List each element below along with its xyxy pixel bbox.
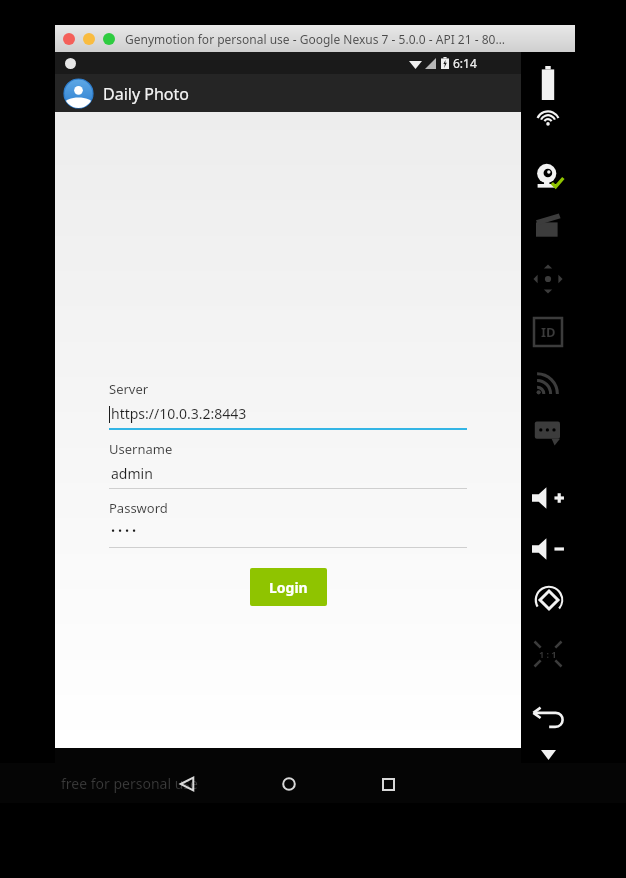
- button[interactable]: Recent apps: [373, 769, 403, 799]
- button[interactable]: Username: [109, 440, 467, 489]
- button[interactable]: GPS: [532, 112, 564, 144]
- staticText: Password: [109, 499, 168, 517]
- staticText: Server: [109, 380, 149, 398]
- button[interactable]: [103, 33, 115, 45]
- button[interactable]: D-pad: [533, 266, 563, 292]
- button[interactable]: Scale 1:1: [533, 640, 563, 668]
- button[interactable]: Camera: [532, 160, 564, 192]
- button[interactable]: Network: [535, 370, 561, 396]
- staticText: free for personal use: [61, 774, 198, 793]
- staticText: Daily Photo: [103, 83, 189, 105]
- button[interactable]: Back: [532, 704, 565, 730]
- button[interactable]: Home: [274, 769, 304, 799]
- staticText: 1 : 1: [539, 648, 557, 660]
- button[interactable]: Identifiers: [534, 318, 562, 346]
- button[interactable]: More: [541, 750, 556, 760]
- button[interactable]: Screen record: [533, 212, 563, 238]
- button[interactable]: [83, 33, 95, 45]
- staticText: Genymotion for personal use - Google Nex…: [125, 31, 505, 47]
- button[interactable]: Login: [250, 568, 327, 606]
- staticText: Login: [269, 578, 308, 597]
- staticText: admin: [111, 464, 153, 483]
- button[interactable]: [63, 33, 75, 45]
- staticText: • • • •: [111, 523, 137, 538]
- button[interactable]: Volume down: [532, 537, 566, 561]
- button[interactable]: Volume up: [532, 486, 566, 510]
- staticText: https://10.0.3.2:8443: [111, 404, 247, 423]
- button[interactable]: Back: [172, 769, 202, 799]
- button[interactable]: Messages: [533, 420, 563, 446]
- button[interactable]: Password: [109, 499, 467, 548]
- button[interactable]: Server: [109, 380, 467, 430]
- staticText: 6:14: [453, 55, 477, 71]
- staticText: Username: [109, 440, 173, 458]
- button[interactable]: Rotate: [534, 585, 564, 615]
- staticText: ID: [541, 323, 556, 341]
